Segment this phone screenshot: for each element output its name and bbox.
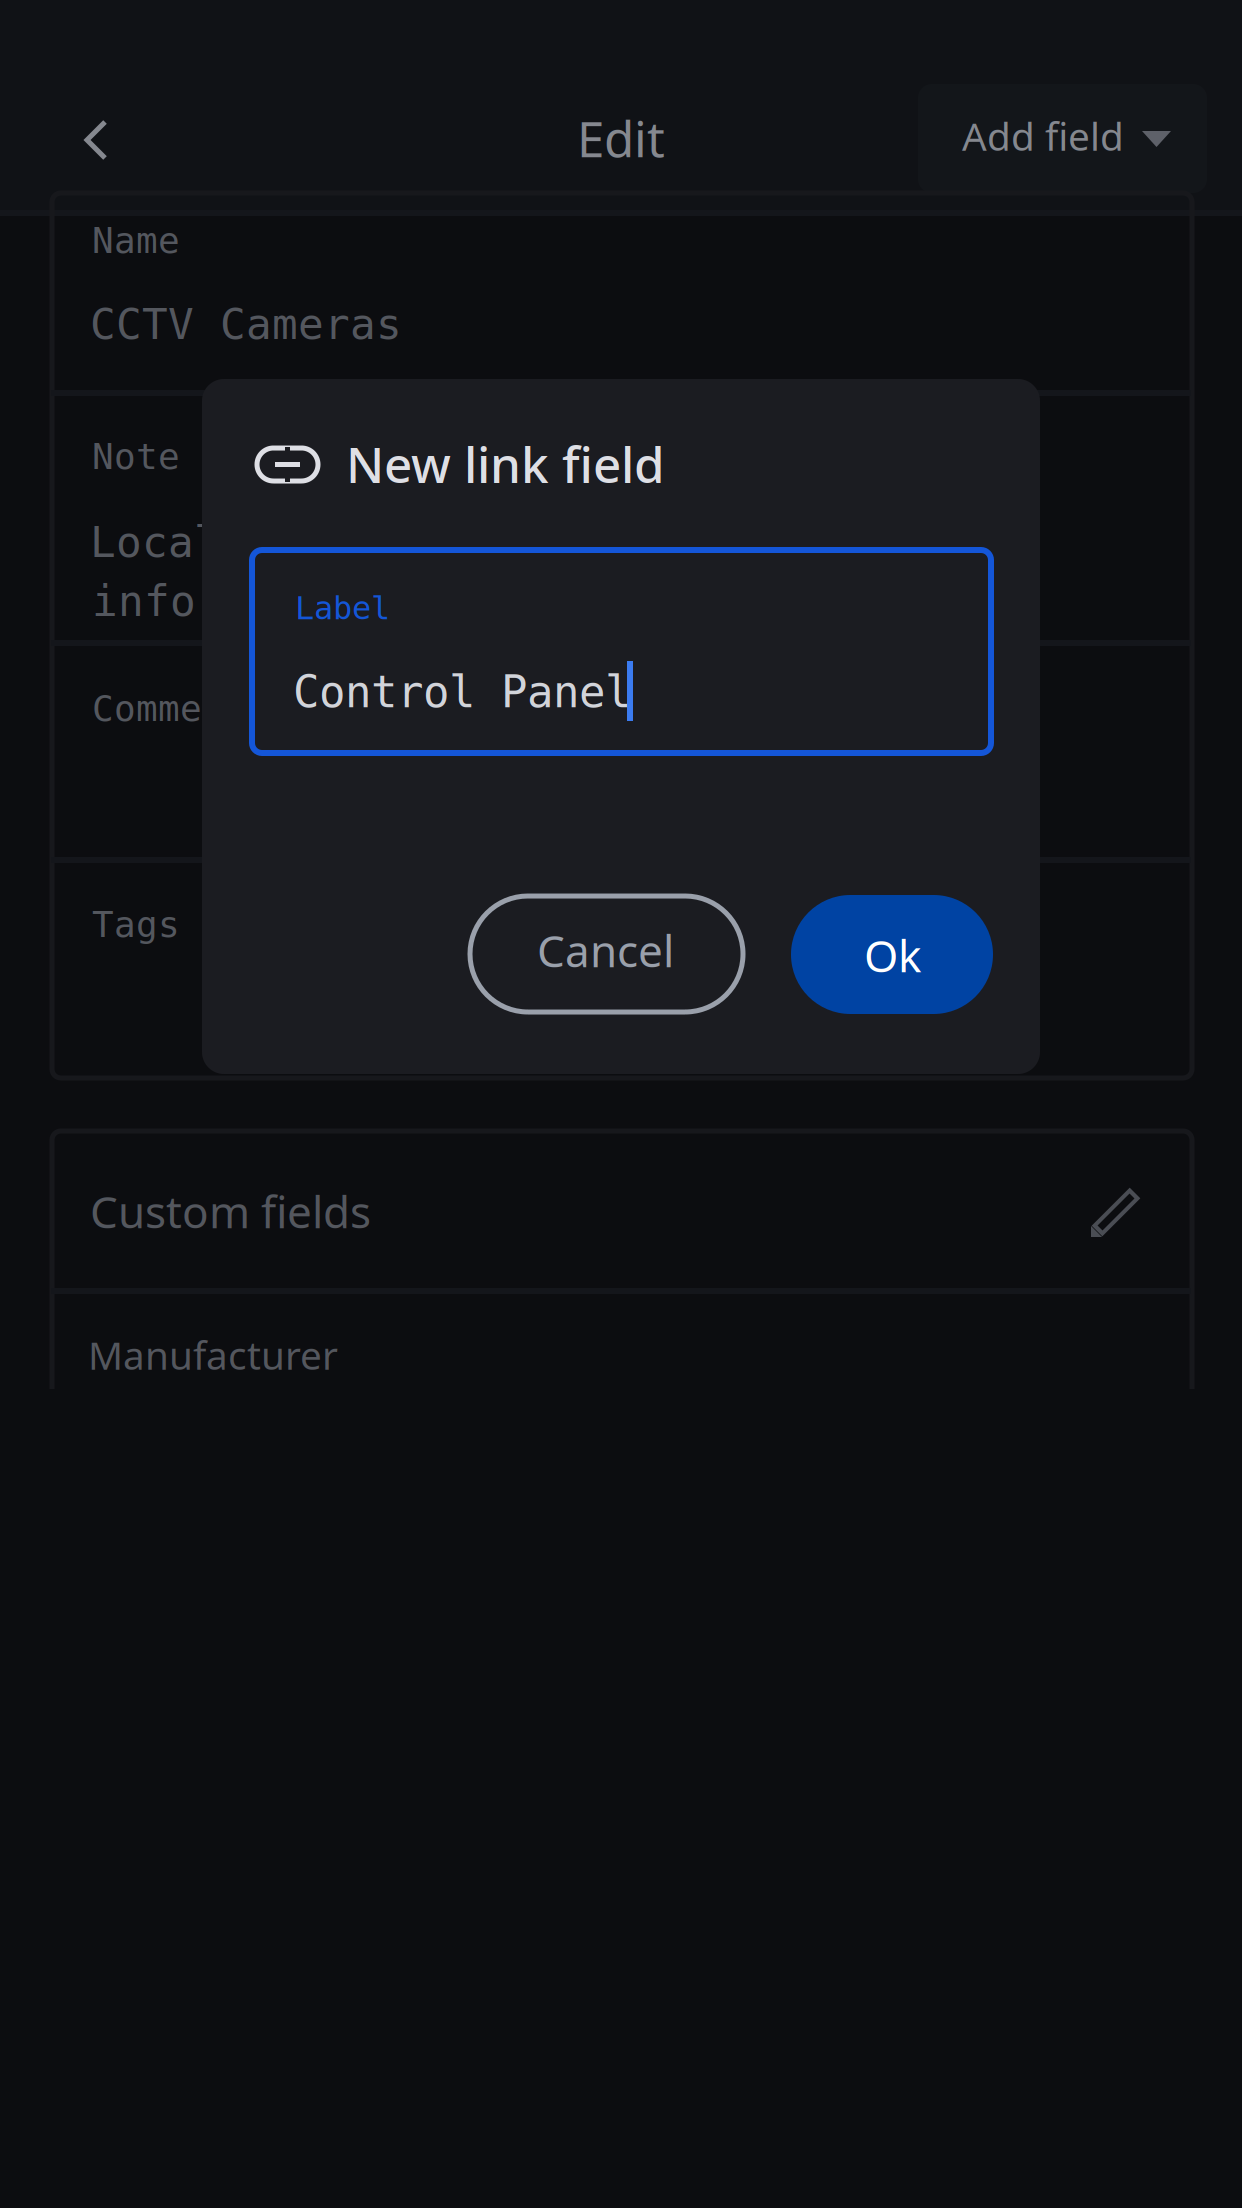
staticText: New link field: [346, 431, 665, 496]
staticText: Comment: [92, 688, 246, 729]
staticText: Cancel: [537, 921, 674, 979]
staticText: Control Panel: [293, 667, 631, 717]
button[interactable]: Cancel: [470, 896, 743, 1012]
staticText: Edit: [577, 105, 665, 171]
button[interactable]: Add field: [918, 84, 1207, 193]
staticText: Custom fields: [90, 1182, 371, 1240]
staticText: Note: [92, 436, 180, 477]
staticText: Ok: [864, 926, 921, 984]
staticText: Add field: [962, 110, 1124, 161]
button[interactable]: Edit custom fields: [1088, 1184, 1144, 1240]
staticText: Manufacturer: [88, 1329, 338, 1380]
button[interactable]: Back: [46, 90, 146, 190]
staticText: Label: [295, 590, 390, 626]
staticText: Tags (0): [92, 904, 268, 945]
staticText: Name: [92, 220, 180, 261]
button[interactable]: Ok: [791, 895, 993, 1014]
staticText: CCTV Cameras: [90, 300, 402, 348]
staticText: Local: [90, 518, 220, 566]
staticText: info: [92, 577, 196, 625]
